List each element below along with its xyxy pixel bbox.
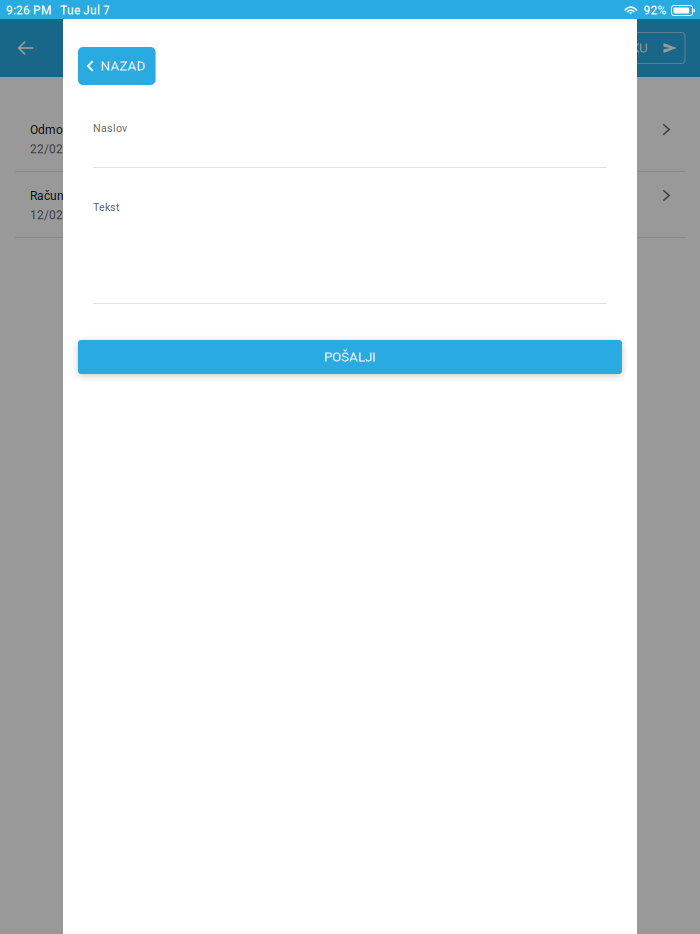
- button[interactable]: Odmor: [0, 106, 700, 171]
- staticText: POŠALJI: [324, 349, 376, 365]
- staticText: Tue Jul 7: [60, 3, 110, 18]
- staticText: NAZAD: [101, 58, 146, 74]
- button[interactable]: POŠALJI PORUKU: [530, 32, 685, 63]
- button[interactable]: Tekst: [93, 168, 607, 304]
- staticText: Naslov: [93, 122, 127, 134]
- staticText: Računi: [30, 189, 67, 203]
- button[interactable]: Računi: [0, 172, 700, 237]
- staticText: 22/02/2020: [30, 142, 96, 156]
- button[interactable]: Back: [0, 19, 52, 77]
- staticText: Tekst: [93, 201, 119, 213]
- button[interactable]: POŠALJI: [78, 340, 622, 374]
- staticText: 92%: [643, 3, 666, 18]
- button[interactable]: NAZAD: [78, 47, 156, 85]
- staticText: Odmor: [30, 123, 67, 137]
- staticText: 9:26 PM: [6, 3, 51, 18]
- staticText: POŠALJI PORUKU: [542, 40, 648, 56]
- button[interactable]: Naslov: [93, 85, 607, 168]
- staticText: 12/02/2020: [30, 208, 96, 222]
